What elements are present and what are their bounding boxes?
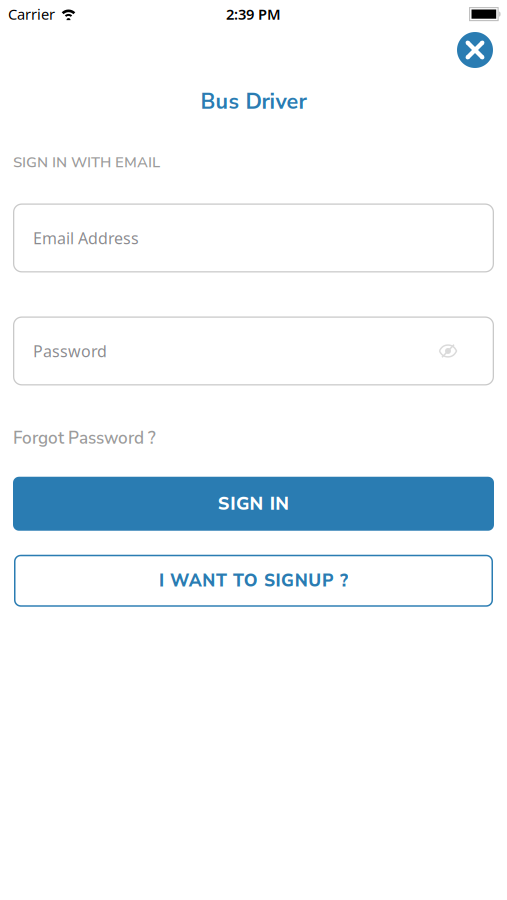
- staticText: Bus Driver: [200, 87, 306, 116]
- staticText: Forgot Password ?: [13, 426, 156, 450]
- staticText: I WANT TO SIGNUP ?: [159, 569, 348, 592]
- button[interactable]: Close: [457, 32, 493, 68]
- staticText: SIGN IN WITH EMAIL: [13, 152, 160, 172]
- staticText: Email Address: [33, 227, 139, 248]
- button[interactable]: Show password: [439, 344, 457, 357]
- staticText: Password: [33, 340, 107, 361]
- staticText: Carrier: [8, 4, 55, 24]
- button[interactable]: I WANT TO SIGNUP ?: [14, 555, 493, 607]
- staticText: 2:39 PM: [226, 4, 281, 24]
- staticText: SIGN IN: [218, 491, 289, 516]
- button[interactable]: Forgot Password ?: [13, 426, 156, 450]
- button[interactable]: SIGN IN: [13, 477, 494, 531]
